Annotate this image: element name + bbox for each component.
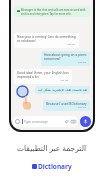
staticText: Dictionary bbox=[38, 162, 72, 171]
button[interactable]: Type a message bbox=[13, 116, 78, 127]
staticText: Messages to this chat and calls are now … bbox=[21, 8, 87, 15]
staticText: لقد تحسنت لغتك الإنجليزية بشكل جيد bbox=[38, 88, 87, 92]
staticText: How about going on a picnic tomorrow? bbox=[44, 53, 87, 61]
button[interactable]: Because I used BDictionary bbox=[43, 100, 90, 111]
other: Attach bbox=[64, 119, 69, 124]
staticText: 7:40 PM bbox=[78, 61, 87, 64]
button[interactable]: How about going on a picnic tomorrow? bbox=[41, 51, 90, 66]
other: Camera bbox=[71, 119, 76, 124]
staticText: New year is coming! Lets do something to… bbox=[17, 35, 76, 43]
button[interactable]: Record voice message bbox=[80, 116, 91, 127]
button[interactable]: لقد تحسنت لغتك الإنجليزية بشكل جيد bbox=[35, 86, 90, 94]
staticText: 7:38 PM bbox=[67, 43, 76, 46]
staticText: Because I used BDictionary bbox=[46, 102, 87, 106]
staticText: Type a message bbox=[24, 120, 48, 124]
staticText: 7:44 PM bbox=[60, 79, 69, 82]
button[interactable]: Good idea! Hmm, your English has improve… bbox=[14, 69, 72, 84]
button[interactable]: New year is coming! Lets do something to… bbox=[14, 33, 79, 48]
button[interactable]: Messages to this chat and calls are now … bbox=[14, 6, 90, 17]
staticText: الترجمة عبر التطبيقات bbox=[17, 143, 86, 153]
staticText: Good idea! Hmm, your English has improve… bbox=[17, 71, 69, 79]
staticText: 7:47 PM bbox=[78, 106, 87, 109]
